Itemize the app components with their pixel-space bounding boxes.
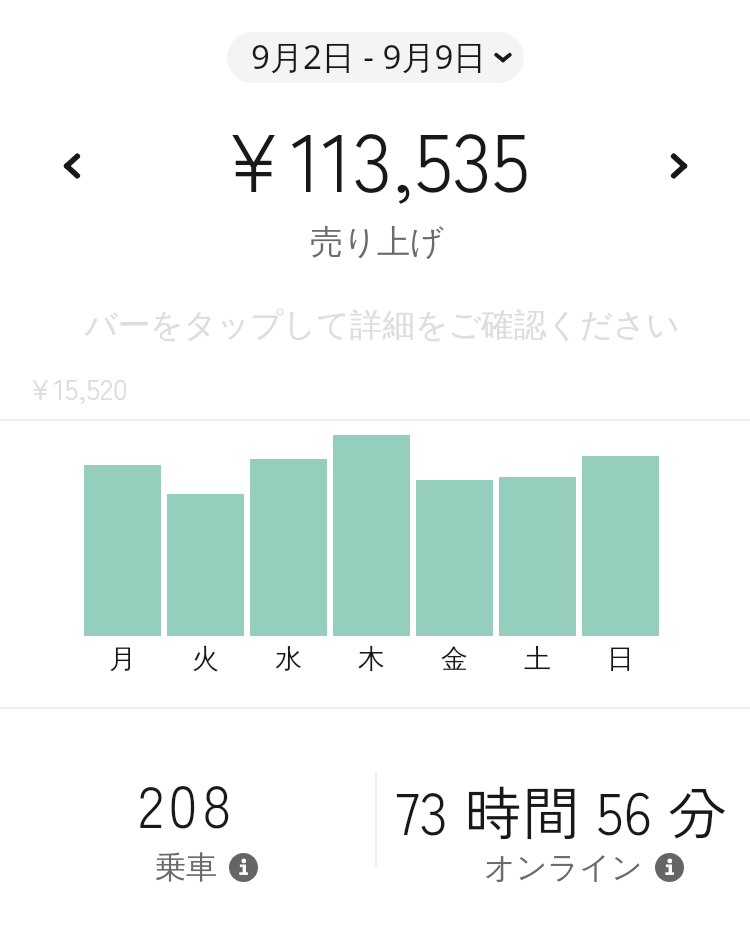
staticText: ¥113,535 — [0, 98, 748, 215]
button[interactable]: Next week — [639, 126, 719, 206]
button[interactable]: 9月2日 - 9月9日 — [227, 32, 524, 83]
staticText: 208 — [0, 761, 387, 845]
button[interactable]: Previous week — [32, 126, 112, 206]
staticText: 土 — [499, 642, 576, 676]
button[interactable]: オンライン — [484, 848, 684, 887]
staticText: 売り上げ — [2, 221, 750, 263]
staticText: オンライン — [484, 848, 643, 887]
staticText: バーをタップして詳細をご確認ください — [7, 305, 750, 346]
staticText: 日 — [582, 642, 659, 676]
button[interactable]: 乗車 — [155, 848, 258, 887]
staticText: 火 — [167, 642, 244, 676]
staticText: 9月2日 - 9月9日 — [251, 34, 487, 79]
staticText: ¥15,520 — [27, 366, 128, 408]
staticText: 乗車 — [155, 848, 217, 887]
other: Info — [655, 853, 684, 882]
staticText: 金 — [416, 642, 493, 676]
staticText: 水 — [250, 642, 327, 676]
staticText: 木 — [333, 642, 410, 676]
staticText: 73 時間 56 分 — [361, 768, 750, 852]
other: Info — [229, 853, 258, 882]
staticText: 月 — [84, 642, 161, 676]
